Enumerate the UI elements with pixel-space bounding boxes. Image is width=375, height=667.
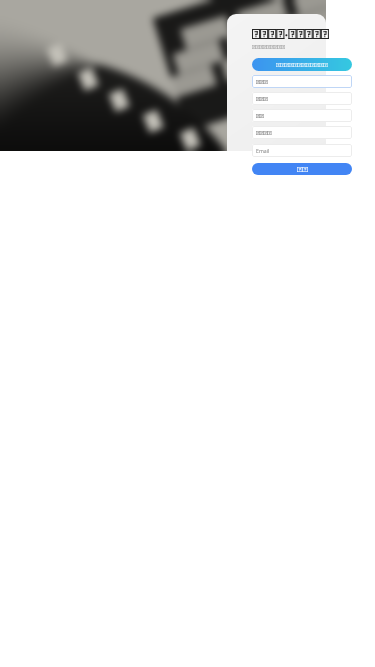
button[interactable]: [252, 126, 352, 139]
button[interactable]: [252, 109, 352, 122]
button[interactable]: [252, 92, 352, 105]
button[interactable]: [252, 58, 352, 71]
staticText: Email: [256, 147, 270, 154]
button[interactable]: Email: [252, 144, 352, 157]
button[interactable]: [252, 163, 352, 175]
button[interactable]: [252, 75, 352, 88]
